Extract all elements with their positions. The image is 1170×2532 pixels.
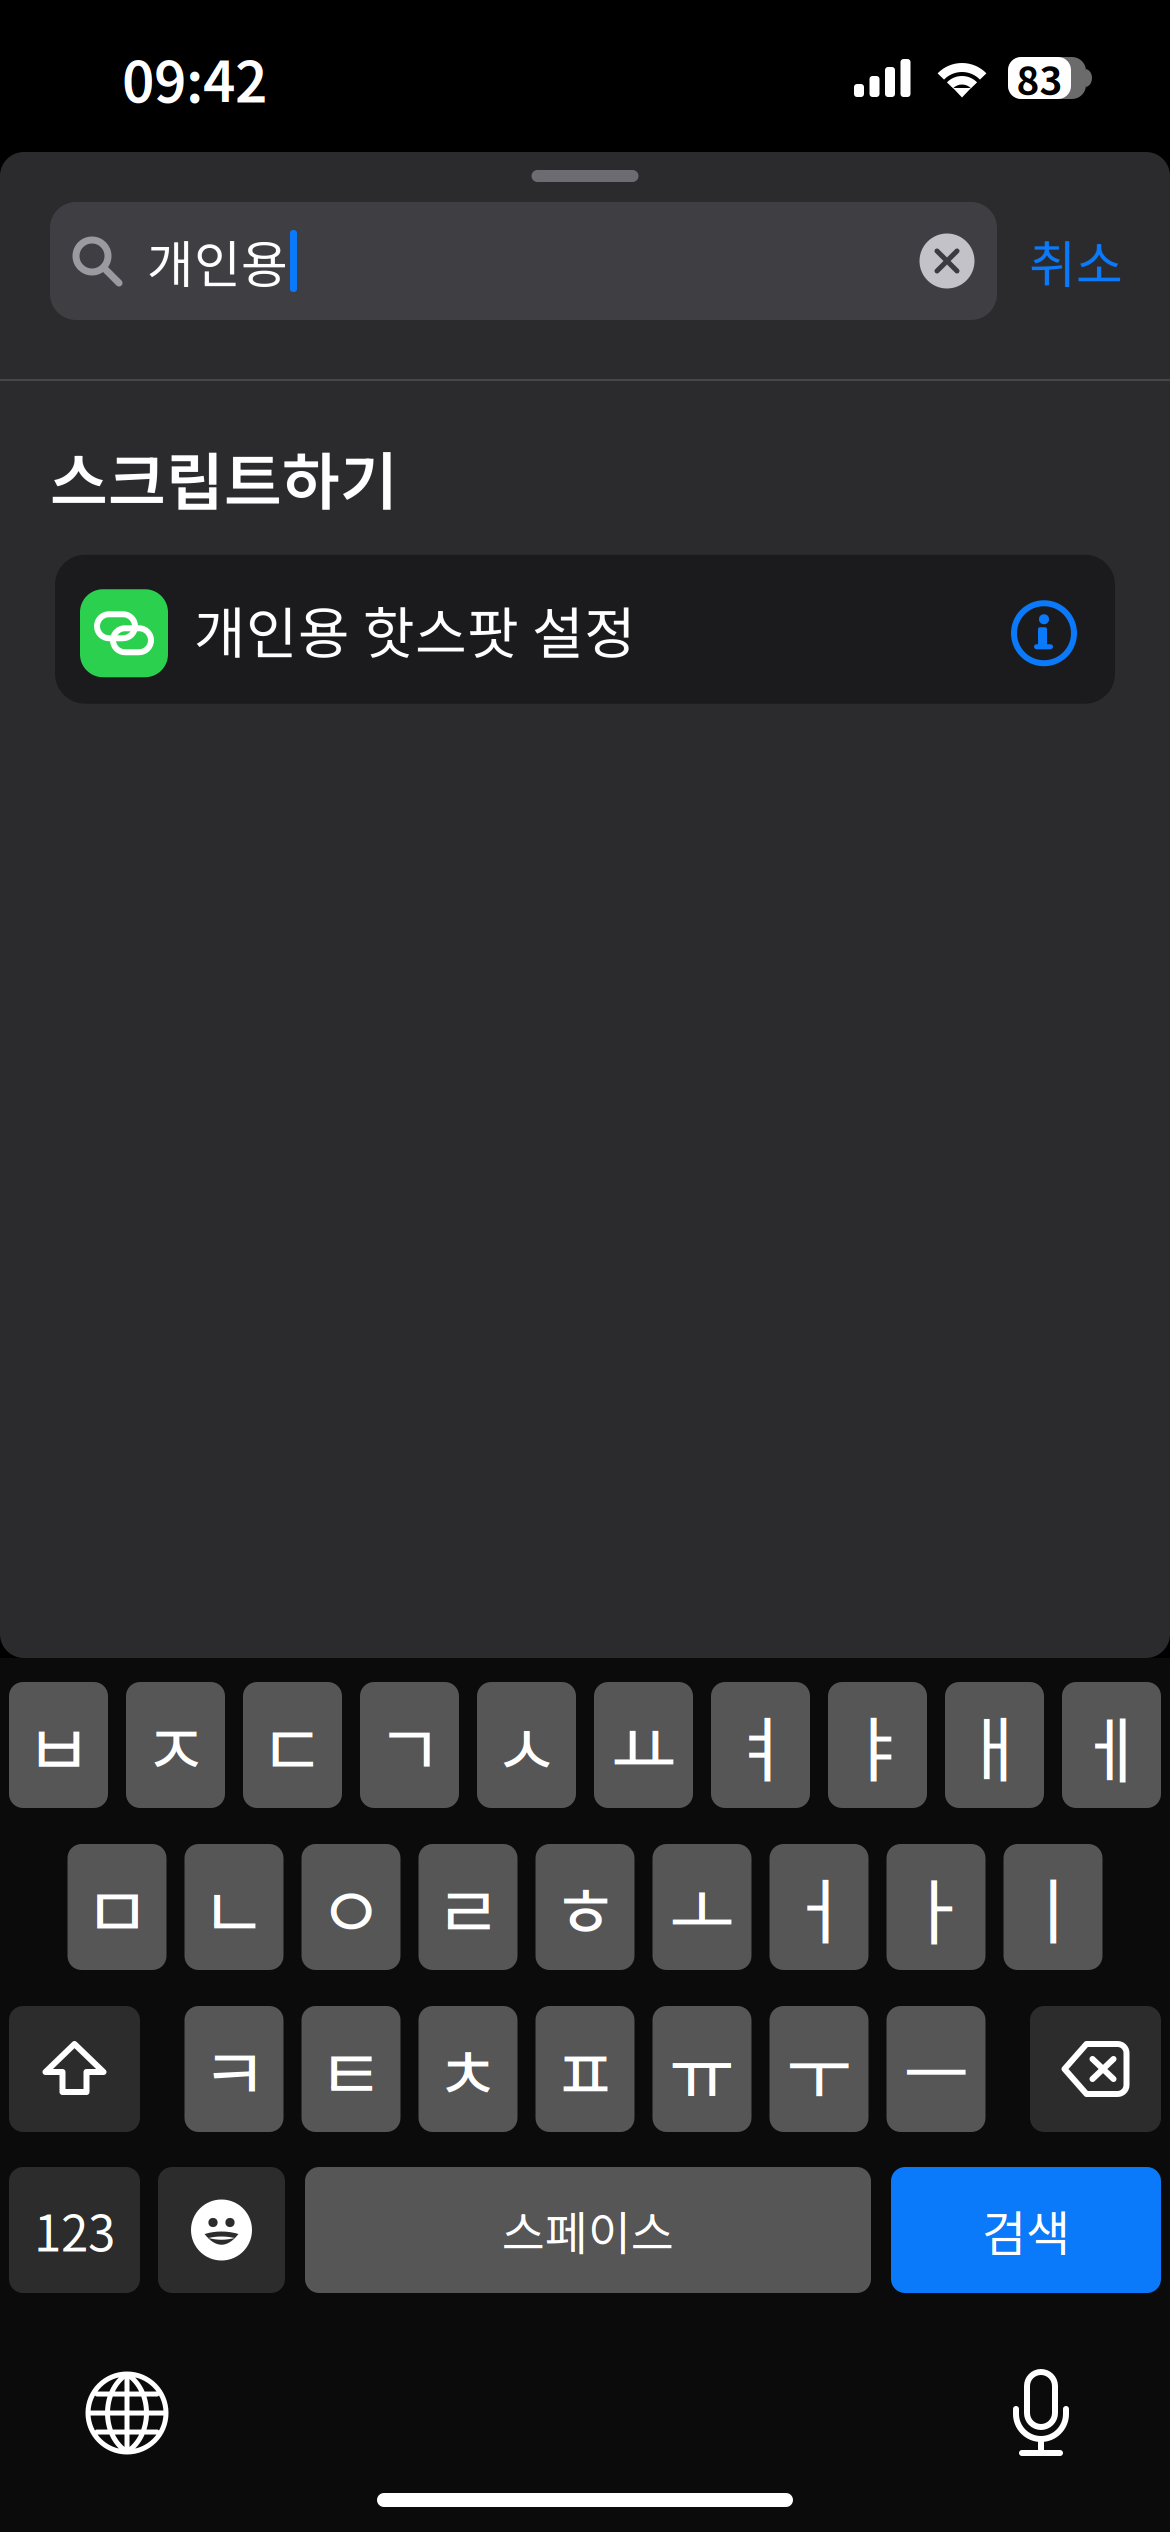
button[interactable]: ㅂ [9,1682,108,1808]
button[interactable]: ㅎ [535,1844,634,1970]
staticText: 취소 [1029,224,1123,298]
button[interactable]: ㅣ [1003,1844,1102,1970]
staticText: ㅏ [903,1855,969,1959]
button[interactable]: 스페이스 [305,2167,871,2293]
staticText: ㅍ [552,2017,618,2121]
staticText: ㅗ [669,1855,735,1959]
staticText: ㅕ [727,1693,793,1797]
staticText: ㄷ [259,1693,325,1797]
staticText: ㅑ [844,1693,910,1797]
button[interactable]: ㅈ [126,1682,225,1808]
button[interactable]: ㅍ [535,2006,634,2132]
staticText: ㅐ [961,1693,1027,1797]
staticText: 09:42 [122,37,267,119]
staticText: ㅂ [25,1693,91,1797]
button[interactable]: Dictation [986,2358,1096,2468]
staticText: ㅠ [669,2017,735,2121]
button[interactable]: ㅔ [1062,1682,1161,1808]
staticText: 검색 [982,2195,1070,2265]
staticText: ㅛ [610,1693,676,1797]
staticText: ㅁ [84,1855,150,1959]
staticText: 83 [1016,50,1062,106]
staticText: ㅓ [786,1855,852,1959]
button[interactable]: Shift [9,2006,140,2132]
staticText: ㅣ [1020,1855,1086,1959]
button[interactable]: ㅗ [652,1844,751,1970]
button[interactable]: ㅜ [769,2006,868,2132]
staticText: 스크립트하기 [50,432,398,523]
staticText: ㄹ [435,1855,501,1959]
button[interactable]: ㅛ [594,1682,693,1808]
button[interactable]: ㅋ [184,2006,283,2132]
staticText: 개인용 핫스팟 설정 [194,589,636,670]
button[interactable]: ㅐ [945,1682,1044,1808]
button[interactable]: ㄹ [418,1844,517,1970]
button[interactable]: Switch keyboard [72,2358,182,2468]
staticText: ㄱ [376,1693,442,1797]
staticText: ㅈ [142,1693,208,1797]
button[interactable]: ㅁ [67,1844,166,1970]
staticText: 123 [34,2194,115,2266]
staticText: ㅇ [318,1855,384,1959]
button[interactable]: ㅠ [652,2006,751,2132]
button[interactable]: ㅡ [886,2006,985,2132]
staticText: ㅡ [903,2017,969,2121]
button[interactable]: ㅕ [711,1682,810,1808]
button[interactable]: ㄴ [184,1844,283,1970]
button[interactable]: ㅓ [769,1844,868,1970]
button[interactable]: 취소 [997,202,1123,320]
button[interactable]: ㄷ [243,1682,342,1808]
staticText: ㅅ [493,1693,559,1797]
button[interactable]: ㅌ [301,2006,400,2132]
button[interactable]: Delete [1030,2006,1161,2132]
staticText: ㅔ [1078,1693,1144,1797]
staticText: ㅎ [552,1855,618,1959]
staticText: ㅋ [201,2017,267,2121]
button[interactable]: 개인용 핫스팟 설정 [55,555,1115,704]
button[interactable]: ㅑ [828,1682,927,1808]
button[interactable]: ㅏ [886,1844,985,1970]
button[interactable]: ㄱ [360,1682,459,1808]
button[interactable]: 검색 [891,2167,1161,2293]
button[interactable]: ㅇ [301,1844,400,1970]
button[interactable]: ㅊ [418,2006,517,2132]
staticText: ㄴ [201,1855,267,1959]
button[interactable]: Emoji [158,2167,285,2293]
staticText: ㅊ [435,2017,501,2121]
staticText: ㅌ [318,2017,384,2121]
staticText: ㅜ [786,2017,852,2121]
button[interactable]: Clear text [897,202,997,320]
staticText: 스페이스 [502,2196,674,2264]
staticText: 개인용 [147,224,288,298]
button[interactable]: ㅅ [477,1682,576,1808]
button[interactable]: 123 [9,2167,140,2293]
